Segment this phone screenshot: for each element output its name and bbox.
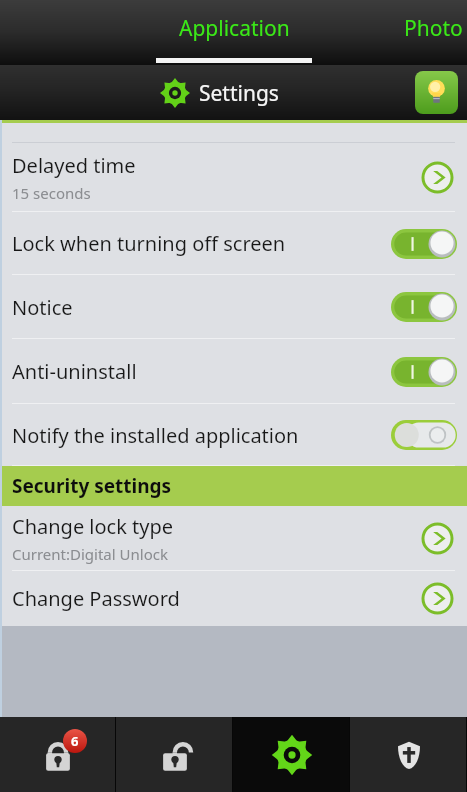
button[interactable]: Locked apps — [0, 717, 116, 792]
staticText: Notify the installed application — [12, 422, 299, 449]
button[interactable]: Notice — [0, 275, 467, 339]
button[interactable]: Change Password — [0, 571, 467, 626]
staticText: 6 — [71, 732, 79, 750]
staticText: Security settings — [12, 473, 172, 499]
button[interactable]: On — [391, 292, 457, 322]
staticText: Delayed time — [12, 152, 136, 179]
button[interactable]: Change lock type — [0, 506, 467, 571]
staticText: Settings — [199, 79, 279, 108]
button[interactable]: Notify the installed application — [0, 404, 467, 466]
staticText: Anti-uninstall — [12, 358, 137, 385]
staticText: Change lock type — [12, 513, 174, 540]
button[interactable]: Anti-uninstall — [0, 339, 467, 404]
button[interactable]: Lock when turning off screen — [0, 212, 467, 275]
button[interactable]: Settings — [233, 717, 350, 792]
staticText: Photo — [404, 14, 463, 43]
staticText: Notice — [12, 294, 73, 321]
staticText: 15 seconds — [12, 183, 91, 203]
button[interactable]: Tips — [415, 71, 458, 114]
button[interactable]: Delayed time — [0, 143, 467, 212]
button[interactable]: Protection — [350, 717, 467, 792]
staticText: Change Password — [12, 585, 180, 612]
staticText: Application — [179, 14, 290, 43]
staticText: Current:Digital Unlock — [12, 544, 168, 564]
button[interactable]: On — [391, 357, 457, 387]
button[interactable]: Unlocked apps — [116, 717, 233, 792]
button[interactable]: Application — [133, 0, 335, 65]
button[interactable]: Photo — [400, 0, 467, 65]
button[interactable]: Off — [391, 420, 457, 450]
staticText: Lock when turning off screen — [12, 230, 286, 257]
button[interactable]: On — [391, 229, 457, 259]
